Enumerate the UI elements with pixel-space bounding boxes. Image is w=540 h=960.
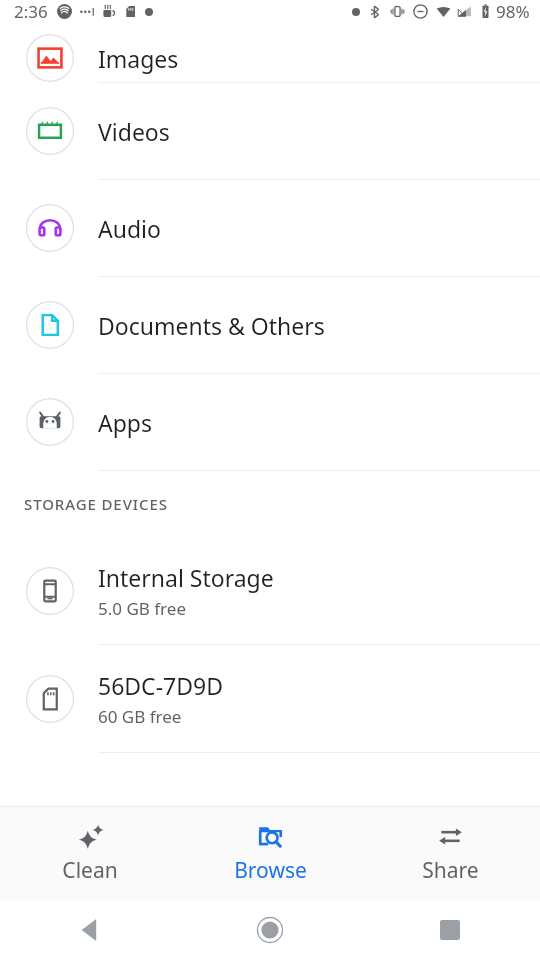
staticText: 56DC-7D9D xyxy=(98,670,223,701)
button[interactable]: Share xyxy=(360,823,540,885)
button[interactable]: Audio xyxy=(0,180,540,276)
button[interactable]: 56DC-7D9D xyxy=(0,645,540,752)
staticText: Documents & Others xyxy=(98,310,325,341)
staticText: Audio xyxy=(98,213,161,244)
button[interactable]: Images xyxy=(0,34,540,82)
button[interactable]: Clean xyxy=(0,823,180,885)
staticText: Clean xyxy=(62,856,118,885)
staticText: Images xyxy=(98,43,179,74)
button[interactable]: Home xyxy=(180,900,360,960)
staticText: Videos xyxy=(98,116,170,147)
button[interactable]: Browse xyxy=(180,823,360,885)
staticText: 5.0 GB free xyxy=(98,597,186,620)
button[interactable]: Documents & Others xyxy=(0,277,540,373)
staticText: 2:36 xyxy=(14,0,48,23)
staticText: Apps xyxy=(98,407,153,438)
staticText: 60 GB free xyxy=(98,705,182,728)
staticText: STORAGE DEVICES xyxy=(24,494,168,514)
staticText: Internal Storage xyxy=(98,562,274,593)
button[interactable]: Videos xyxy=(0,83,540,179)
staticText: 98% xyxy=(496,0,530,23)
button[interactable]: Recent apps xyxy=(360,900,540,960)
staticText: Browse xyxy=(234,856,307,885)
button[interactable]: Apps xyxy=(0,374,540,470)
staticText: Share xyxy=(422,856,479,885)
button[interactable]: Internal Storage xyxy=(0,537,540,644)
button[interactable]: Back xyxy=(0,900,180,960)
